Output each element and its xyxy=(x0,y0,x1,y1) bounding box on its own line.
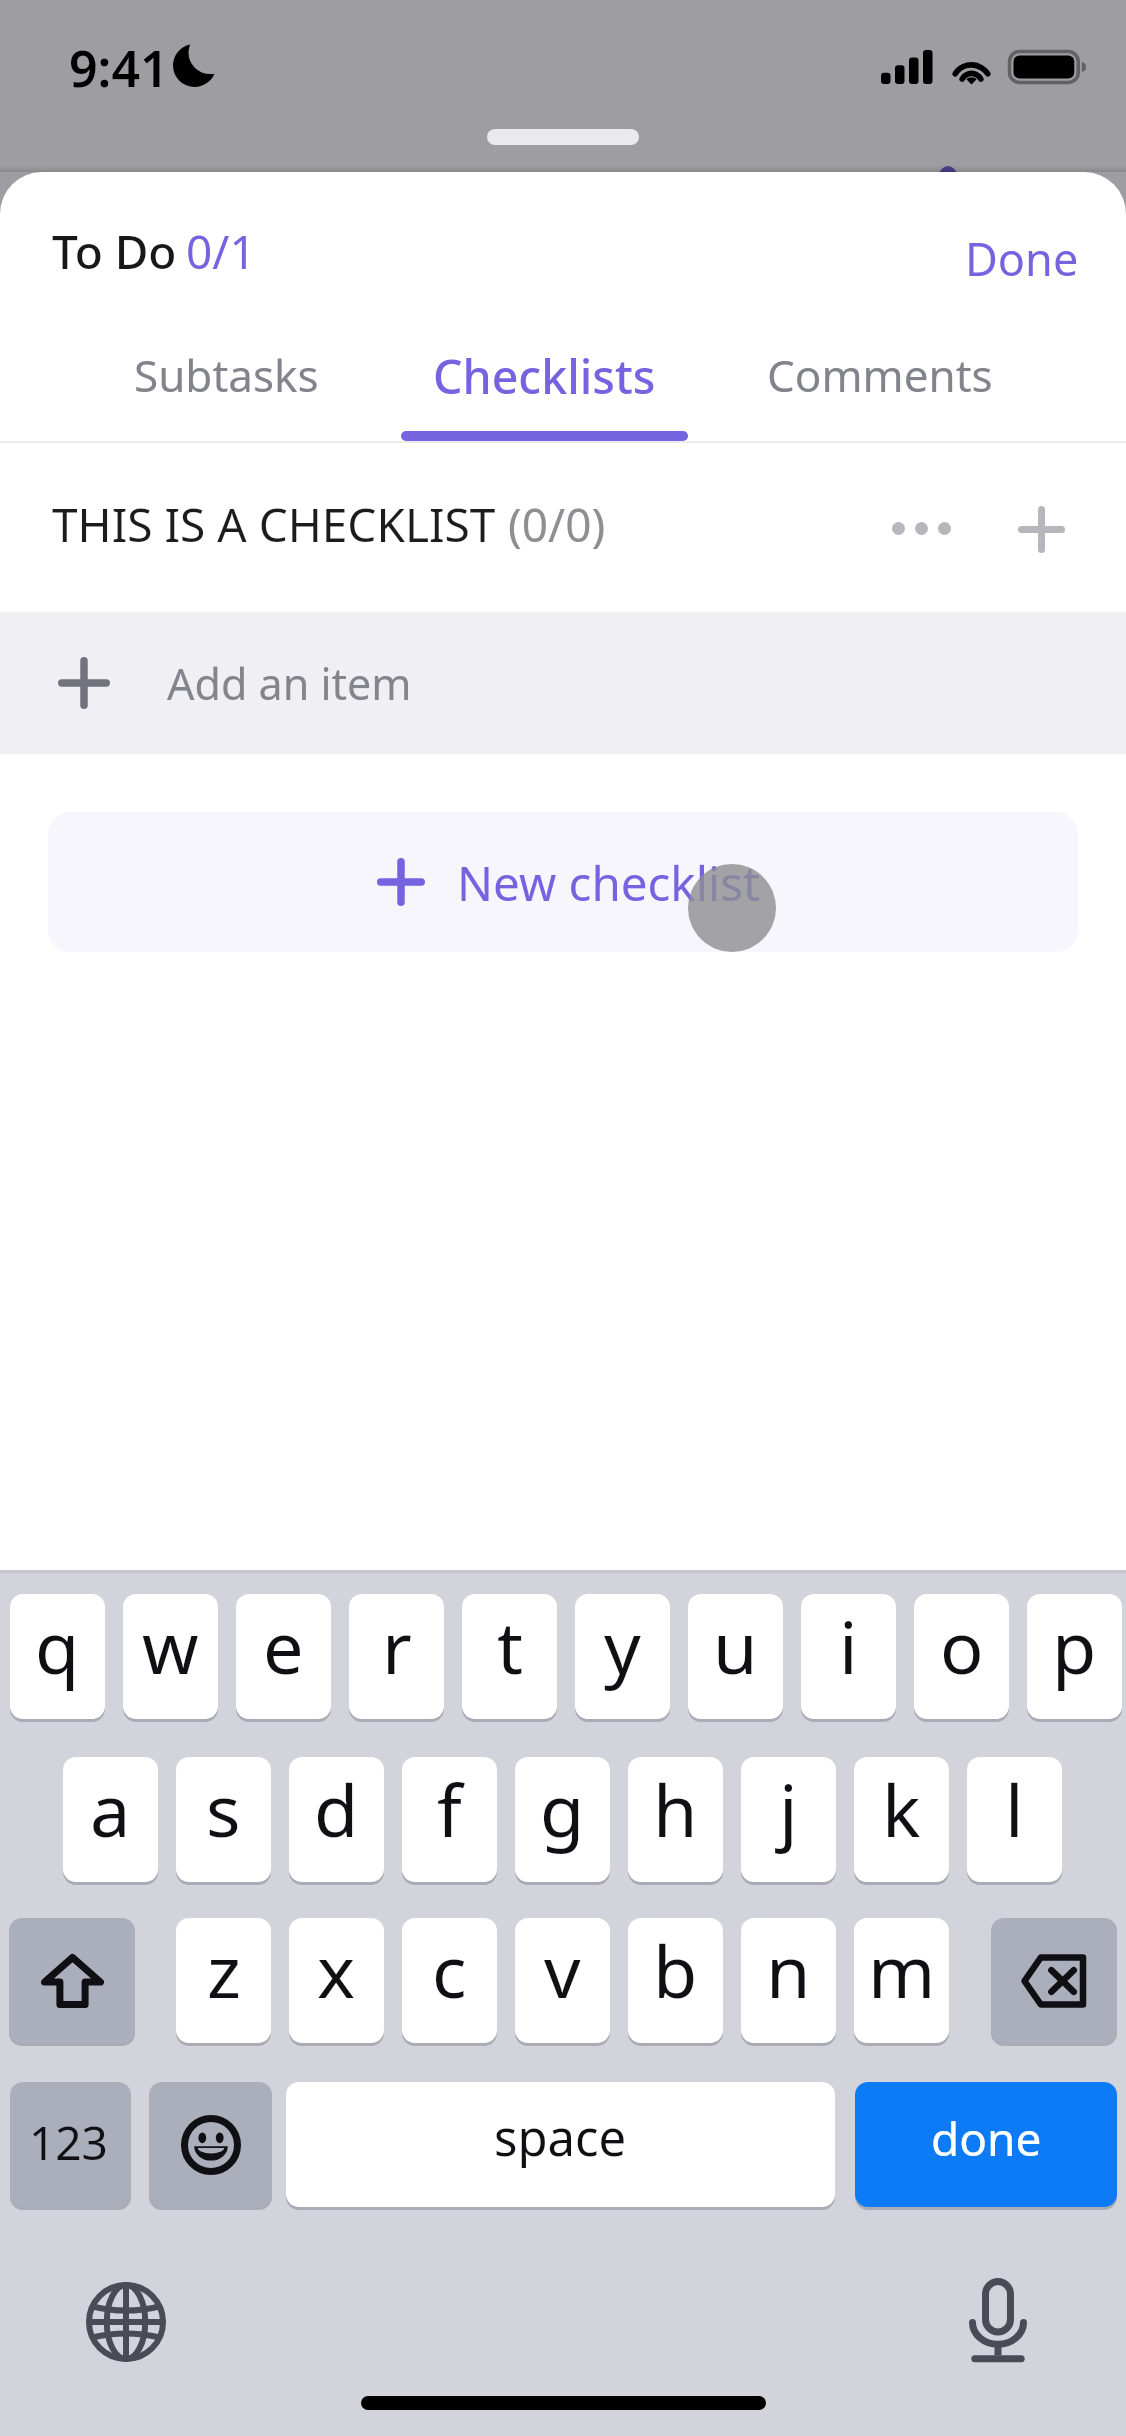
button[interactable]: w xyxy=(123,1594,218,1719)
button[interactable]: i xyxy=(801,1594,896,1719)
staticText: n xyxy=(766,1921,811,2019)
button[interactable]: p xyxy=(1027,1594,1122,1719)
button[interactable]: k xyxy=(854,1757,949,1882)
button[interactable]: Add checklist xyxy=(986,483,1096,575)
staticText: j xyxy=(779,1760,798,1858)
button[interactable]: 123 xyxy=(10,2082,131,2207)
button[interactable]: c xyxy=(402,1918,497,2043)
button[interactable]: Emoji xyxy=(149,2082,272,2207)
button[interactable]: b xyxy=(628,1918,723,2043)
button[interactable]: m xyxy=(854,1918,949,2043)
button[interactable]: s xyxy=(176,1757,271,1882)
button[interactable]: e xyxy=(236,1594,331,1719)
button[interactable]: u xyxy=(688,1594,783,1719)
staticText: y xyxy=(604,1597,641,1695)
button[interactable]: Subtasks xyxy=(76,313,376,437)
button[interactable]: l xyxy=(967,1757,1062,1882)
staticText: done xyxy=(931,2107,1042,2170)
button[interactable]: v xyxy=(515,1918,610,2043)
button[interactable]: n xyxy=(741,1918,836,2043)
staticText: g xyxy=(540,1760,585,1858)
staticText: z xyxy=(207,1921,241,2019)
staticText: i xyxy=(839,1597,858,1695)
button[interactable]: New checklist xyxy=(48,812,1078,952)
button[interactable]: Comments xyxy=(730,313,1030,437)
button[interactable]: Checklists xyxy=(394,313,694,437)
staticText: s xyxy=(206,1760,241,1858)
button[interactable]: f xyxy=(402,1757,497,1882)
staticText: q xyxy=(35,1597,80,1695)
staticText: Done xyxy=(965,228,1079,289)
button[interactable]: Add an item xyxy=(0,612,1126,754)
button[interactable]: j xyxy=(741,1757,836,1882)
staticText: m xyxy=(868,1921,936,2019)
staticText: To Do xyxy=(52,220,177,283)
button[interactable]: r xyxy=(349,1594,444,1719)
staticText: b xyxy=(653,1921,698,2019)
staticText: r xyxy=(382,1597,412,1695)
staticText: d xyxy=(314,1760,359,1858)
button[interactable]: Backspace xyxy=(991,1918,1117,2043)
staticText: p xyxy=(1052,1597,1097,1695)
staticText: o xyxy=(940,1597,984,1695)
staticText: Checklists xyxy=(433,344,656,407)
staticText: a xyxy=(90,1760,131,1858)
staticText: space xyxy=(494,2104,627,2171)
staticText: l xyxy=(1005,1760,1024,1858)
staticText: Comments xyxy=(767,345,993,405)
button[interactable]: y xyxy=(575,1594,670,1719)
staticText: New checklist xyxy=(457,850,761,915)
staticText: THIS IS A CHECKLIST xyxy=(52,493,508,556)
button[interactable]: Shift xyxy=(9,1918,135,2043)
button[interactable]: q xyxy=(10,1594,105,1719)
staticText: c xyxy=(432,1921,467,2019)
staticText: w xyxy=(142,1597,199,1695)
staticText: h xyxy=(653,1760,698,1858)
staticText: 9:41 xyxy=(69,34,169,102)
staticText: 123 xyxy=(29,2111,108,2174)
staticText: e xyxy=(263,1597,304,1695)
button[interactable]: x xyxy=(289,1918,384,2043)
button[interactable]: Dictate xyxy=(950,2272,1046,2368)
button[interactable]: done xyxy=(855,2082,1117,2207)
staticText: t xyxy=(497,1597,523,1695)
button[interactable]: t xyxy=(462,1594,557,1719)
button[interactable]: o xyxy=(914,1594,1009,1719)
staticText: v xyxy=(544,1921,581,2019)
button[interactable]: Done xyxy=(937,203,1107,313)
button[interactable]: h xyxy=(628,1757,723,1882)
staticText: f xyxy=(437,1760,462,1858)
button[interactable]: space xyxy=(286,2082,835,2207)
staticText: k xyxy=(882,1760,921,1858)
staticText: Add an item xyxy=(167,654,412,713)
button[interactable]: g xyxy=(515,1757,610,1882)
button[interactable]: z xyxy=(176,1918,271,2043)
button[interactable]: a xyxy=(63,1757,158,1882)
staticText: (0/0) xyxy=(508,493,606,556)
button[interactable]: Change keyboard xyxy=(78,2274,174,2370)
button[interactable]: d xyxy=(289,1757,384,1882)
staticText: x xyxy=(317,1921,356,2019)
staticText: Subtasks xyxy=(134,345,319,405)
button[interactable]: More options xyxy=(866,482,976,574)
staticText: 0/1 xyxy=(186,220,256,283)
staticText: u xyxy=(713,1597,758,1695)
